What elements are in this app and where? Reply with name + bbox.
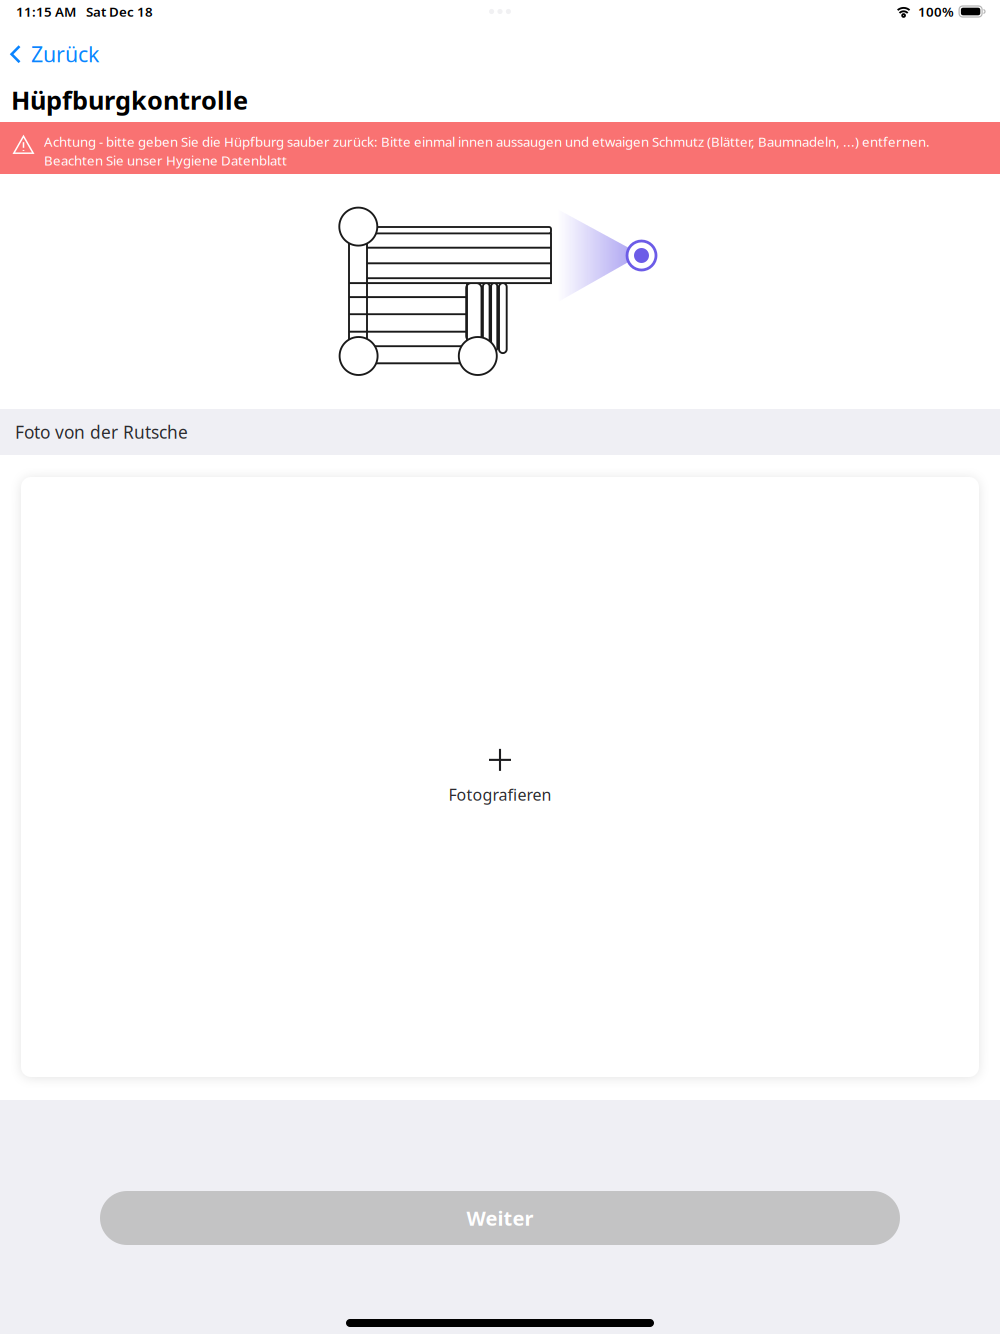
- staticText: 11:15 AM: [16, 3, 76, 20]
- staticText: Foto von der Rutsche: [15, 420, 188, 443]
- staticText: Beachten Sie unser Hygiene Datenblatt: [44, 151, 287, 169]
- staticText: 100%: [918, 3, 954, 20]
- button[interactable]: Zurück: [0, 34, 111, 74]
- button[interactable]: Fotografieren: [21, 477, 979, 1077]
- staticText: Fotografieren: [448, 784, 551, 805]
- staticText: Achtung - bitte geben Sie die Hüpfburg s…: [44, 133, 930, 150]
- button[interactable]: Weiter: [100, 1191, 900, 1245]
- staticText: Zurück: [31, 40, 99, 68]
- staticText: Hüpfburgkontrolle: [11, 83, 248, 117]
- staticText: Sat Dec 18: [86, 3, 153, 20]
- staticText: Weiter: [466, 1205, 533, 1231]
